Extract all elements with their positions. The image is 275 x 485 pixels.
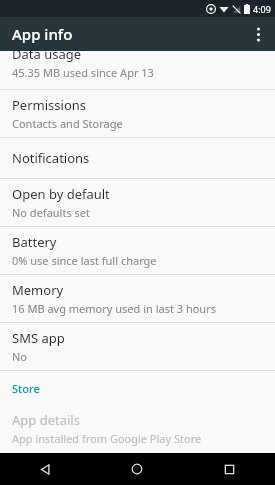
staticText: App details	[12, 411, 80, 429]
button[interactable]: Battery	[0, 227, 275, 274]
staticText: No	[12, 349, 28, 364]
button[interactable]: Recent apps	[183, 453, 275, 485]
staticText: 16 MB avg memory used in last 3 hours	[12, 301, 216, 316]
staticText: Open by default	[12, 185, 110, 203]
button[interactable]: More options	[241, 17, 275, 51]
staticText: Battery	[12, 233, 57, 251]
staticText: Store	[12, 381, 40, 396]
button[interactable]: Memory	[0, 275, 275, 322]
button[interactable]: Back	[0, 453, 91, 485]
staticText: Permissions	[12, 96, 87, 114]
staticText: 4:09	[253, 3, 271, 15]
staticText: Data usage	[12, 45, 82, 63]
button[interactable]: Notifications	[0, 138, 275, 178]
staticText: No defaults set	[12, 205, 90, 220]
button[interactable]: Home	[91, 453, 183, 485]
button[interactable]: Permissions	[0, 90, 275, 137]
button[interactable]: App details	[0, 405, 275, 452]
staticText: Notifications	[12, 149, 90, 167]
staticText: SMS app	[12, 329, 65, 347]
staticText: App info	[12, 24, 73, 44]
staticText: Memory	[12, 281, 64, 299]
button[interactable]: Open by default	[0, 179, 275, 226]
button[interactable]: SMS app	[0, 323, 275, 370]
staticText: App installed from Google Play Store	[12, 431, 202, 446]
staticText: 0% use since last full charge	[12, 253, 157, 268]
button[interactable]: Data usage	[0, 51, 275, 89]
staticText: Contacts and Storage	[12, 116, 123, 131]
staticText: 45.35 MB used since Apr 13	[12, 65, 154, 80]
